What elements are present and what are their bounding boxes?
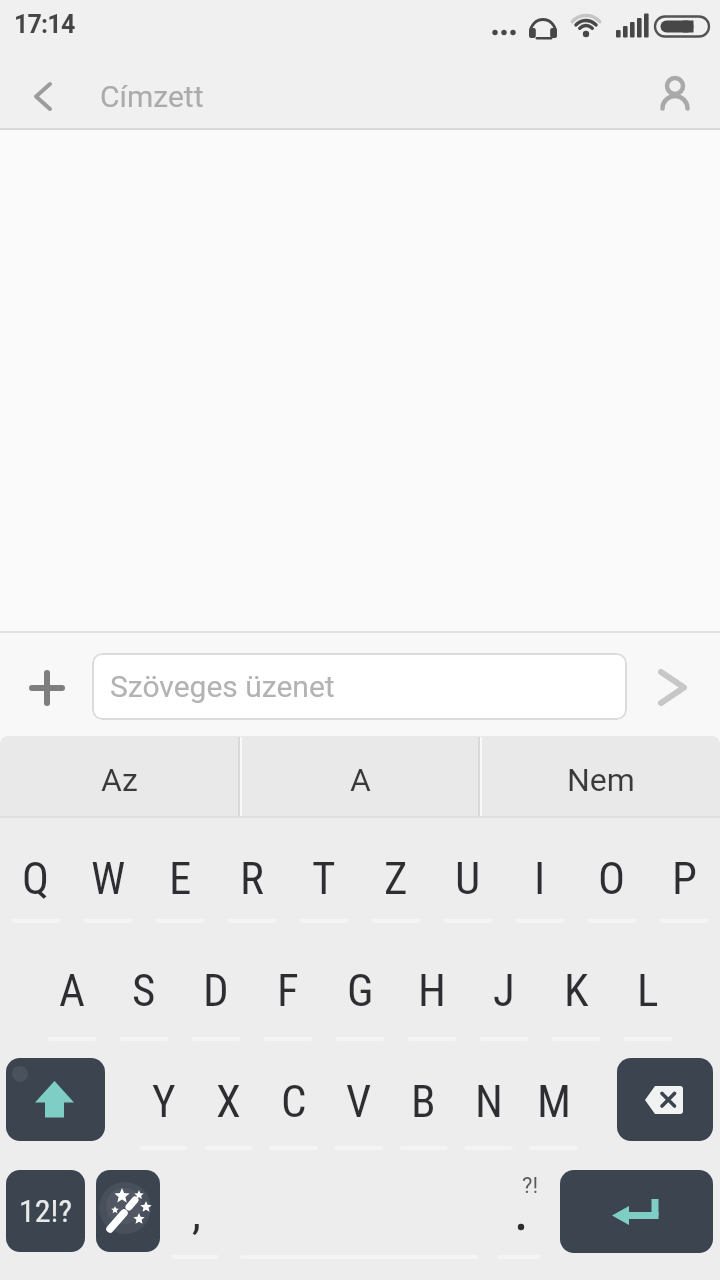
staticText: E (169, 852, 192, 905)
button[interactable] (6, 1058, 105, 1141)
staticText: 17:14 (14, 10, 75, 39)
button[interactable]: F (252, 936, 324, 1044)
staticText: H (418, 964, 446, 1017)
staticText: V (346, 1075, 372, 1128)
button[interactable]: C (261, 1047, 326, 1155)
button[interactable] (650, 66, 702, 122)
button[interactable]: Nem (481, 739, 720, 821)
button[interactable]: G (324, 936, 396, 1044)
button[interactable] (488, 1156, 560, 1264)
button[interactable]: A (241, 739, 479, 821)
staticText: K (564, 964, 589, 1017)
staticText: C (281, 1075, 307, 1128)
staticText: S (132, 964, 156, 1017)
staticText: Z (384, 852, 408, 905)
button[interactable]: A (36, 936, 108, 1044)
button[interactable]: L (612, 936, 684, 1044)
staticText: P (672, 852, 697, 905)
button[interactable]: X (196, 1047, 261, 1155)
button[interactable] (96, 1170, 160, 1252)
button[interactable]: R (216, 824, 288, 932)
button[interactable]: D (180, 936, 252, 1044)
button[interactable]: P (648, 824, 720, 932)
button[interactable] (25, 666, 69, 710)
button[interactable]: B (391, 1047, 456, 1155)
staticText: , (192, 1187, 201, 1240)
button[interactable]: H (396, 936, 468, 1044)
staticText: I (534, 852, 546, 905)
button[interactable]: K (540, 936, 612, 1044)
staticText: L (637, 964, 659, 1017)
staticText: 12!? (19, 1192, 72, 1230)
staticText: O (598, 852, 626, 905)
staticText: B (411, 1075, 436, 1128)
button[interactable]: Y (131, 1047, 196, 1155)
staticText: U (455, 852, 481, 905)
staticText: W (91, 852, 126, 905)
button[interactable]: J (468, 936, 540, 1044)
button[interactable]: N (456, 1047, 521, 1155)
staticText: Y (152, 1075, 176, 1128)
staticText: G (347, 964, 374, 1017)
staticText: F (277, 964, 299, 1017)
button[interactable] (617, 1058, 713, 1141)
staticText: Címzett (100, 79, 204, 114)
staticText: Nem (567, 761, 635, 799)
button[interactable]: Az (0, 739, 239, 821)
button[interactable]: Szöveges üzenet (92, 653, 627, 720)
button[interactable] (22, 72, 66, 120)
button[interactable]: V (326, 1047, 391, 1155)
staticText: R (240, 852, 264, 905)
button[interactable] (560, 1170, 713, 1253)
staticText: T (312, 852, 336, 905)
button[interactable]: U (432, 824, 504, 932)
button[interactable] (648, 664, 698, 712)
staticText: X (216, 1075, 241, 1128)
staticText: Az (101, 761, 138, 799)
button[interactable]: E (144, 824, 216, 932)
button[interactable]: I (504, 824, 576, 932)
staticText: ?! (522, 1173, 539, 1199)
staticText: D (203, 964, 229, 1017)
button[interactable]: W (72, 824, 144, 932)
button[interactable]: S (108, 936, 180, 1044)
button[interactable]: Q (0, 824, 72, 932)
staticText: Szöveges üzenet (110, 669, 335, 704)
button[interactable]: T (288, 824, 360, 932)
staticText: Q (22, 852, 50, 905)
staticText: J (493, 964, 515, 1017)
button[interactable]: Z (360, 824, 432, 932)
button[interactable]: M (521, 1047, 586, 1155)
staticText: M (537, 1075, 571, 1128)
staticText: A (350, 761, 371, 799)
button[interactable]: O (576, 824, 648, 932)
button[interactable]: , (160, 1159, 232, 1267)
button[interactable]: 12!? (6, 1170, 85, 1252)
staticText: N (475, 1075, 503, 1128)
staticText: A (59, 964, 85, 1017)
